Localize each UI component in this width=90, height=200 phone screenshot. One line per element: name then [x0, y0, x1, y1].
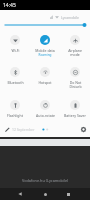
button[interactable]: Auto-rotate — [30, 100, 60, 118]
button[interactable]: Recents — [60, 188, 76, 200]
staticText: 12 September — [12, 127, 35, 132]
staticText: 14:45 — [3, 2, 16, 9]
staticText: Hotspot — [38, 80, 52, 85]
staticText: Flashlight — [7, 113, 23, 118]
button[interactable]: Hotspot — [30, 67, 60, 85]
button[interactable]: Airplane mode — [60, 35, 90, 57]
staticText: Mobile data — [35, 48, 55, 53]
button[interactable]: Battery Saver — [60, 100, 90, 118]
button[interactable]: Wi-Fi — [0, 35, 30, 53]
button[interactable]: Home — [37, 188, 53, 200]
staticText: Airplane mode — [68, 48, 82, 57]
button[interactable]: Edit — [2, 124, 12, 134]
staticText: Bluetooth — [7, 80, 24, 85]
button[interactable]: Do Not Disturb — [60, 67, 90, 89]
button[interactable]: Back — [12, 188, 28, 200]
staticText: Roaming — [35, 53, 55, 57]
staticText: Battery Saver — [64, 113, 86, 118]
staticText: Lycamobile — [61, 15, 80, 20]
button[interactable]: Bluetooth — [0, 67, 30, 85]
button[interactable]: Mobile data — [30, 35, 60, 57]
staticText: Wi-Fi — [11, 48, 20, 53]
button[interactable]: Flashlight — [0, 100, 30, 118]
staticText: Do Not Disturb — [69, 80, 82, 89]
button[interactable]: Settings — [78, 124, 88, 134]
staticText: Auto-rotate — [36, 113, 55, 118]
staticText: Vodafone.hu (Lycamobile) — [22, 178, 69, 183]
